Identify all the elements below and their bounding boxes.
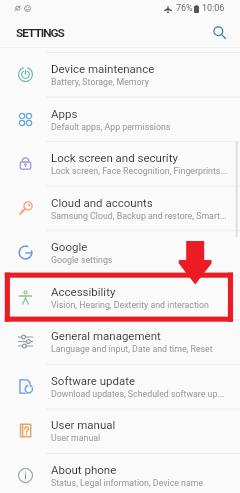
staticText: Accessibility (51, 285, 116, 298)
button[interactable]: Search (207, 20, 231, 44)
button[interactable]: Software update (0, 364, 240, 409)
button[interactable]: Cloud and accounts (0, 186, 240, 231)
staticText: Language and input, Date and time, Reset (51, 344, 213, 354)
button[interactable]: About phone (0, 453, 240, 493)
button[interactable]: Apps (0, 97, 240, 142)
staticText: About phone (51, 463, 117, 476)
staticText: Download updates, Scheduled software up.… (51, 389, 225, 399)
staticText: Device maintenance (51, 62, 155, 75)
staticText: Battery, Storage, Memory (51, 77, 149, 87)
staticText: User manual (51, 418, 116, 431)
staticText: Lock screen, Face Recognition, Fingerpri… (51, 166, 228, 176)
button[interactable]: Lock screen and security (0, 141, 240, 186)
staticText: Cloud and accounts (51, 196, 153, 209)
staticText: Default apps, App permissions (51, 122, 171, 132)
staticText: Samsung Cloud, Backup and restore, Smart… (51, 211, 227, 221)
staticText: Vision, Hearing, Dexterity and interacti… (51, 300, 209, 310)
button[interactable]: User manual (0, 408, 240, 453)
button[interactable]: General management (0, 319, 240, 364)
staticText: Apps (51, 107, 78, 120)
staticText: Google settings (51, 255, 113, 265)
staticText: Status, Legal information, Device name (51, 478, 204, 488)
button[interactable]: Accessibility (0, 275, 240, 320)
staticText: 10:06 (202, 3, 225, 14)
button[interactable]: Google (0, 230, 240, 275)
button[interactable]: Device maintenance (0, 52, 240, 97)
staticText: General management (51, 329, 161, 342)
staticText: Google (51, 240, 88, 253)
staticText: Lock screen and security (51, 151, 178, 164)
staticText: 76% (176, 3, 193, 14)
staticText: Software update (51, 374, 136, 387)
staticText: User manual (51, 433, 101, 443)
staticText: SETTINGS (16, 26, 64, 40)
